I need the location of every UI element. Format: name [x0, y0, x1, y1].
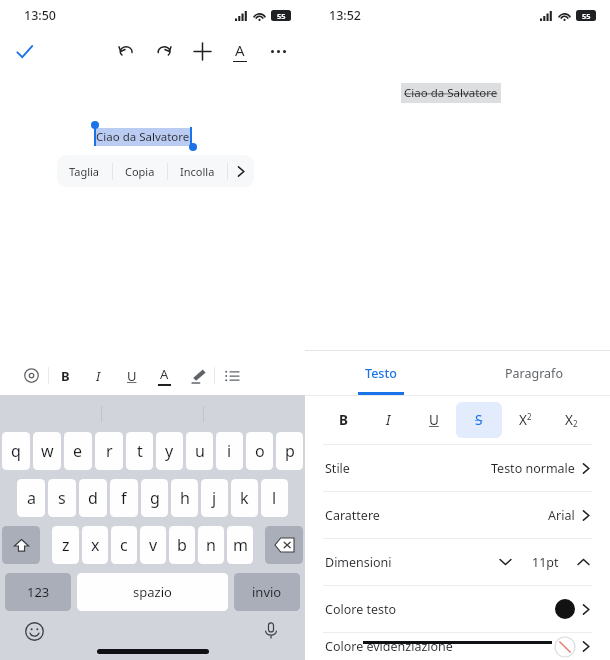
button[interactable]: y — [156, 432, 183, 470]
staticText: I — [96, 367, 101, 385]
staticText: k — [240, 487, 249, 509]
button[interactable]: Text formatting — [221, 32, 259, 70]
button[interactable]: Stile — [305, 445, 610, 491]
button[interactable]: I — [82, 359, 115, 392]
button[interactable]: s — [48, 479, 76, 517]
staticText: X — [519, 411, 527, 429]
button[interactable]: 123 — [5, 573, 71, 611]
staticText: g — [150, 487, 160, 509]
button[interactable]: Colore evidenziazione — [305, 633, 610, 660]
staticText: m — [233, 534, 248, 556]
button[interactable]: Insert — [183, 32, 221, 70]
button[interactable]: a — [17, 479, 45, 517]
button[interactable]: Taglia — [57, 155, 112, 187]
button[interactable]: B — [49, 359, 82, 392]
button[interactable]: Colore testo — [305, 586, 610, 632]
staticText: h — [180, 487, 190, 509]
staticText: Incolla — [180, 164, 215, 179]
button[interactable]: Done — [7, 34, 41, 68]
button[interactable]: Carattere — [305, 492, 610, 538]
staticText: n — [206, 534, 216, 556]
button[interactable]: e — [64, 432, 92, 470]
button[interactable]: Emoji — [20, 617, 48, 645]
staticText: 55 — [582, 11, 591, 21]
staticText: B — [61, 367, 70, 385]
button[interactable]: S — [456, 402, 502, 438]
button[interactable]: j — [201, 479, 228, 517]
button[interactable]: Paragrafo — [457, 351, 610, 395]
button[interactable]: Highlight color — [181, 359, 214, 392]
button[interactable]: r — [95, 432, 123, 470]
staticText: Testo normale — [491, 460, 575, 477]
button[interactable]: Text color — [148, 359, 181, 392]
button[interactable]: w — [33, 432, 61, 470]
other: Increase size — [577, 558, 590, 566]
button[interactable]: z — [52, 526, 79, 564]
button[interactable]: Shift — [2, 526, 40, 564]
staticText: 55 — [277, 11, 286, 21]
button[interactable]: Bulleted list — [215, 359, 248, 392]
staticText: y — [165, 440, 174, 462]
button[interactable]: U — [411, 402, 456, 438]
button[interactable]: spazio — [77, 573, 228, 611]
staticText: o — [255, 440, 265, 462]
button[interactable]: k — [231, 479, 258, 517]
staticText: Arial — [548, 507, 575, 524]
staticText: r — [106, 440, 113, 462]
button[interactable]: Copia — [113, 155, 167, 187]
button[interactable]: Redo — [145, 32, 183, 70]
button[interactable]: More actions — [228, 155, 254, 187]
button[interactable]: More options — [259, 32, 297, 70]
staticText: Colore evidenziazione — [325, 638, 453, 655]
staticText: 2 — [527, 411, 532, 422]
button[interactable]: i — [216, 432, 243, 470]
button[interactable]: Mention — [15, 359, 48, 392]
staticText: d — [88, 487, 98, 509]
button[interactable]: m — [227, 526, 253, 564]
staticText: Ciao da Salvatore — [404, 85, 498, 101]
staticText: l — [272, 487, 277, 509]
button[interactable]: h — [171, 479, 198, 517]
staticText: I — [386, 411, 391, 429]
button[interactable]: f — [110, 479, 138, 517]
staticText: z — [62, 534, 70, 556]
button[interactable]: Voice input — [257, 617, 285, 645]
staticText: a — [27, 487, 36, 509]
button[interactable]: X — [548, 402, 594, 438]
staticText: j — [212, 487, 217, 509]
button[interactable]: I — [366, 402, 411, 438]
staticText: A — [235, 40, 245, 60]
button[interactable]: Backspace — [265, 526, 303, 564]
button[interactable]: u — [186, 432, 213, 470]
button[interactable]: x — [82, 526, 108, 564]
button[interactable]: t — [126, 432, 153, 470]
button[interactable]: p — [276, 432, 303, 470]
staticText: A — [160, 365, 169, 383]
button[interactable]: Testo — [305, 351, 457, 395]
button[interactable]: n — [198, 526, 224, 564]
button[interactable]: v — [140, 526, 166, 564]
staticText: 13:50 — [24, 7, 57, 24]
button[interactable]: Incolla — [168, 155, 227, 187]
button[interactable]: o — [246, 432, 273, 470]
staticText: i — [227, 440, 232, 462]
staticText: Paragrafo — [505, 365, 563, 382]
staticText: Testo — [365, 365, 397, 382]
staticText: U — [429, 411, 439, 429]
button[interactable]: Dimensioni — [305, 539, 610, 585]
button[interactable]: g — [141, 479, 168, 517]
button[interactable]: l — [261, 479, 288, 517]
button[interactable]: d — [79, 479, 107, 517]
button[interactable]: B — [321, 402, 366, 438]
other: Decrease size — [499, 558, 512, 566]
button[interactable]: c — [111, 526, 137, 564]
button[interactable]: invio — [234, 573, 300, 611]
button[interactable]: q — [2, 432, 30, 470]
button[interactable]: b — [169, 526, 195, 564]
staticText: 11pt — [532, 554, 559, 571]
button[interactable]: Undo — [107, 32, 145, 70]
button[interactable]: U — [115, 359, 148, 392]
staticText: Carattere — [325, 507, 380, 524]
button[interactable]: X — [502, 402, 548, 438]
staticText: Dimensioni — [325, 554, 392, 571]
